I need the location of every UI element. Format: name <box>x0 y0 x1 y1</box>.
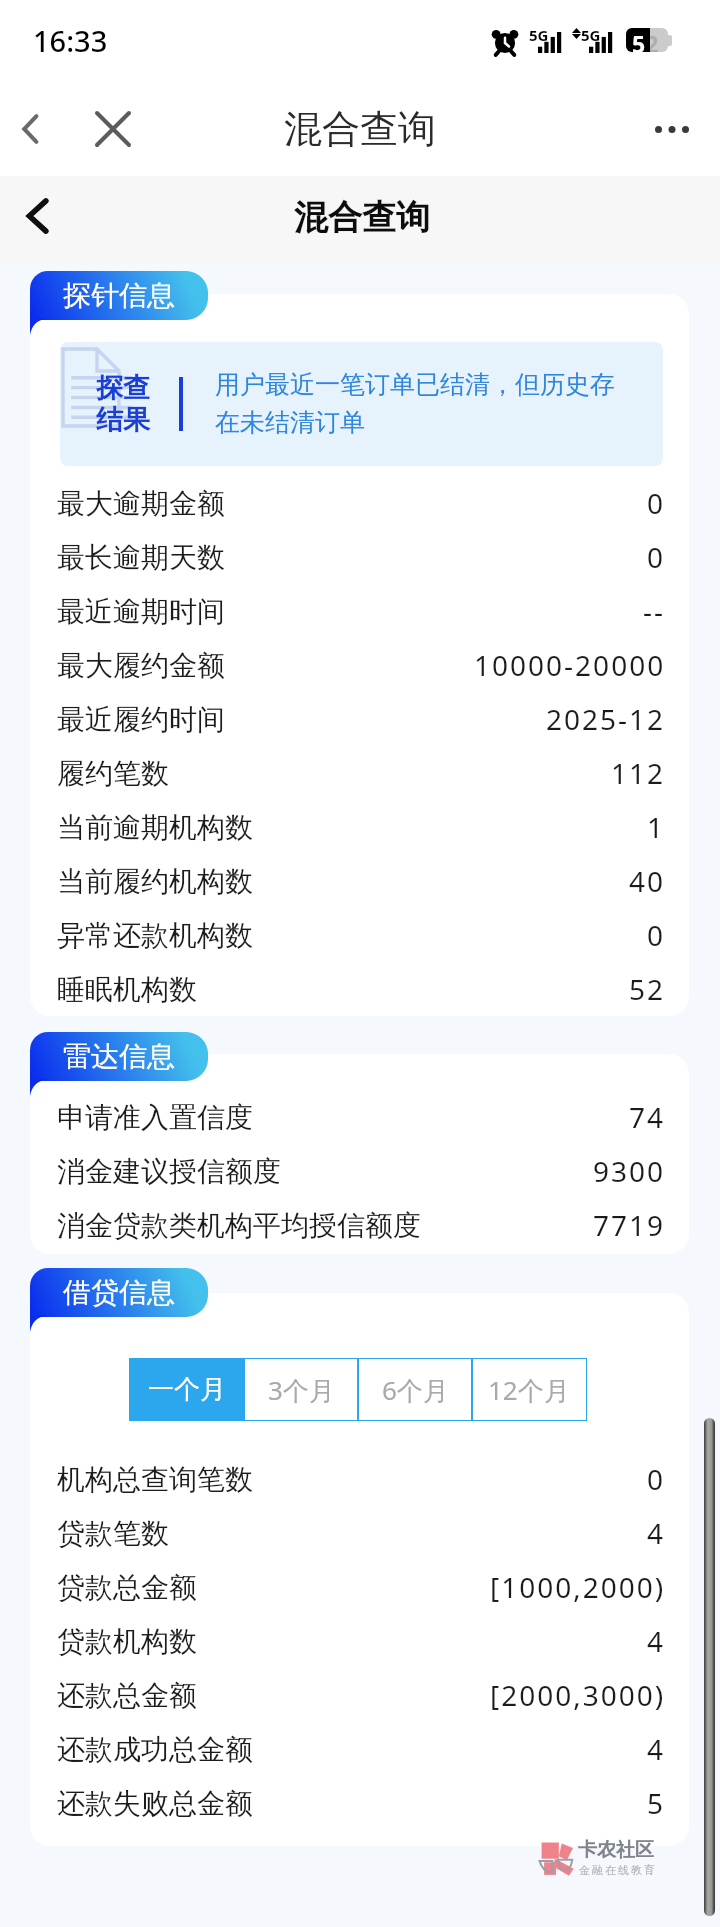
staticText: 52 <box>629 970 666 1008</box>
button[interactable]: 当前履约机构数 <box>30 854 689 908</box>
button[interactable]: 借贷信息 <box>30 1268 208 1317</box>
staticText: 贷款机构数 <box>57 1624 197 1659</box>
staticText: 贷款笔数 <box>57 1516 169 1551</box>
button[interactable]: 申请准入置信度 <box>30 1090 689 1144</box>
button[interactable]: 最大逾期金额 <box>30 476 689 530</box>
staticText: 金融在线教育 <box>578 1863 656 1877</box>
staticText: 最大履约金额 <box>57 648 225 683</box>
staticText: 5G <box>581 25 601 45</box>
staticText: 0 <box>647 1460 666 1498</box>
button[interactable]: 消金贷款类机构平均授信额度 <box>30 1198 689 1252</box>
staticText: 消金建议授信额度 <box>57 1154 281 1189</box>
staticText: 申请准入置信度 <box>57 1100 253 1135</box>
staticText: [2000,3000) <box>490 1676 666 1714</box>
button[interactable]: Close <box>85 101 141 157</box>
staticText: 消金贷款类机构平均授信额度 <box>57 1208 421 1243</box>
staticText: 异常还款机构数 <box>57 918 253 953</box>
button[interactable]: 最近履约时间 <box>30 692 689 746</box>
button[interactable]: 当前逾期机构数 <box>30 800 689 854</box>
staticText: 74 <box>629 1098 666 1136</box>
button[interactable]: 贷款机构数 <box>30 1614 689 1668</box>
staticText: 卡农社区 <box>578 1838 654 1862</box>
button[interactable]: 贷款笔数 <box>30 1506 689 1560</box>
button[interactable]: 最长逾期天数 <box>30 530 689 584</box>
staticText: 40 <box>629 862 666 900</box>
button[interactable]: 12个月 <box>472 1359 586 1420</box>
button[interactable]: 消金建议授信额度 <box>30 1144 689 1198</box>
staticText: 借贷信息 <box>63 1275 175 1310</box>
staticText: 最近履约时间 <box>57 702 225 737</box>
staticText: 混合查询 <box>294 196 430 239</box>
staticText: 探查 结果 <box>96 371 150 437</box>
button[interactable]: 探针信息 <box>30 271 208 320</box>
button[interactable]: 睡眠机构数 <box>30 962 689 1016</box>
button[interactable]: 一个月 <box>130 1359 244 1420</box>
staticText: 5 <box>647 1784 666 1822</box>
staticText: 4 <box>647 1622 666 1660</box>
button[interactable]: 最大履约金额 <box>30 638 689 692</box>
staticText: 还款失败总金额 <box>57 1786 253 1821</box>
button[interactable]: 贷款总金额 <box>30 1560 689 1614</box>
staticText: 还款总金额 <box>57 1678 197 1713</box>
staticText: 1 <box>647 808 666 846</box>
staticText: 当前逾期机构数 <box>57 810 253 845</box>
staticText: 52 <box>632 28 659 52</box>
staticText: 5G <box>529 25 549 45</box>
button[interactable]: Back <box>3 101 59 157</box>
staticText: 机构总查询笔数 <box>57 1462 253 1497</box>
staticText: 12个月 <box>488 1372 570 1408</box>
staticText: 一个月 <box>148 1373 226 1406</box>
staticText: 睡眠机构数 <box>57 972 197 1007</box>
staticText: 最长逾期天数 <box>57 540 225 575</box>
button[interactable]: Navigate back <box>9 187 67 245</box>
staticText: 0 <box>647 916 666 954</box>
button[interactable]: 3个月 <box>244 1359 358 1420</box>
staticText: 最大逾期金额 <box>57 486 225 521</box>
staticText: 52 <box>632 28 650 52</box>
staticText: 4 <box>647 1514 666 1552</box>
staticText: 4 <box>647 1730 666 1768</box>
staticText: 雷达信息 <box>63 1039 175 1074</box>
staticText: 用户最近一笔订单已结清，但历史存在未结清订单 <box>215 369 620 439</box>
staticText: 16:33 <box>33 21 108 60</box>
staticText: 2025-12 <box>546 700 666 738</box>
staticText: 6个月 <box>382 1372 449 1408</box>
staticText: 112 <box>611 754 666 792</box>
staticText: 还款成功总金额 <box>57 1732 253 1767</box>
staticText: 3个月 <box>268 1372 335 1408</box>
staticText: 混合查询 <box>284 105 436 153</box>
staticText: 履约笔数 <box>57 756 169 791</box>
staticText: 9300 <box>593 1152 666 1190</box>
staticText: 贷款总金额 <box>57 1570 197 1605</box>
staticText: 7719 <box>593 1206 666 1244</box>
button[interactable]: 雷达信息 <box>30 1032 208 1081</box>
button[interactable]: 履约笔数 <box>30 746 689 800</box>
staticText: 探针信息 <box>63 278 175 313</box>
staticText: 当前履约机构数 <box>57 864 253 899</box>
button[interactable]: 6个月 <box>358 1359 472 1420</box>
staticText: 最近逾期时间 <box>57 594 225 629</box>
button[interactable]: 还款总金额 <box>30 1668 689 1722</box>
button[interactable]: 还款成功总金额 <box>30 1722 689 1776</box>
button[interactable]: 机构总查询笔数 <box>30 1452 689 1506</box>
button[interactable]: 还款失败总金额 <box>30 1776 689 1830</box>
staticText: -- <box>643 592 666 630</box>
button[interactable]: 最近逾期时间 <box>30 584 689 638</box>
staticText: 10000-20000 <box>474 646 666 684</box>
staticText: [1000,2000) <box>490 1568 666 1606</box>
staticText: 0 <box>647 484 666 522</box>
button[interactable]: 异常还款机构数 <box>30 908 689 962</box>
button[interactable]: More options <box>644 101 700 157</box>
staticText: 0 <box>647 538 666 576</box>
